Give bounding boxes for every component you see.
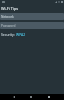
button[interactable]: Home — [28, 94, 34, 100]
button[interactable]: Password — [0, 22, 64, 29]
staticText: WPA2 — [16, 32, 26, 37]
staticText: Password — [1, 24, 16, 28]
button[interactable]: Recent apps — [46, 94, 52, 100]
button[interactable]: Security: — [1, 32, 64, 37]
button[interactable]: Wi-Fi Tips — [0, 4, 64, 12]
button[interactable]: Back — [11, 94, 17, 100]
staticText: Wi-Fi Tips — [1, 6, 19, 11]
button[interactable]: Network — [0, 13, 64, 20]
staticText: Network — [1, 15, 14, 19]
staticText: Security: — [1, 32, 16, 37]
